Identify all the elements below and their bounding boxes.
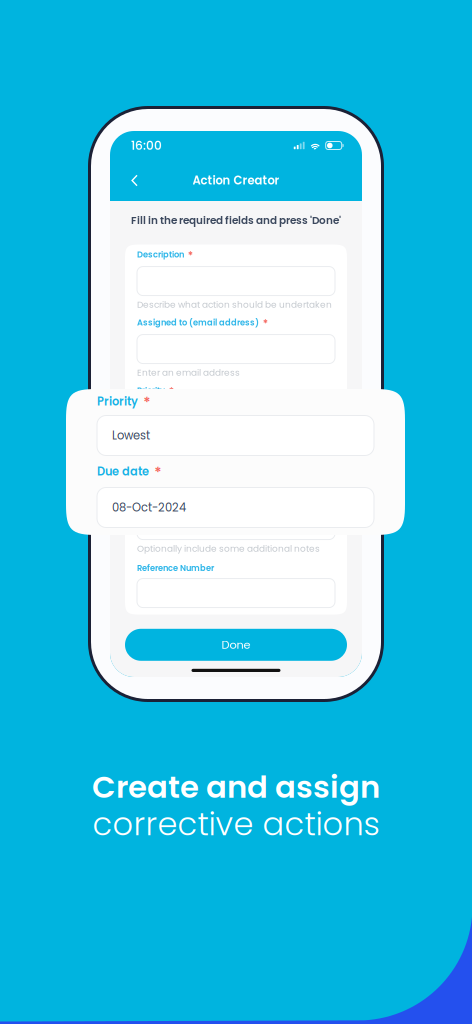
staticText: Reference Number	[137, 562, 214, 574]
staticText: *	[263, 316, 268, 331]
staticText: Due date	[97, 464, 149, 479]
staticText: Done	[221, 637, 250, 653]
staticText: Assigned to (email address)	[137, 317, 259, 328]
staticText: Due date	[137, 439, 175, 450]
button[interactable]: Done	[125, 629, 347, 661]
staticText: corrective actions	[92, 802, 379, 846]
staticText: Description	[137, 249, 184, 260]
staticText: *	[169, 384, 174, 399]
staticText: Priority	[137, 385, 165, 396]
staticText: 08-Oct-2024	[112, 499, 186, 516]
staticText: *	[154, 463, 161, 483]
staticText: Notes	[137, 494, 161, 506]
staticText: Fill in the required fields and press 'D…	[131, 213, 341, 228]
button[interactable]: Back	[123, 167, 146, 193]
staticText: Priority	[97, 394, 138, 409]
staticText: 16:00	[131, 137, 162, 154]
staticText: Describe what action should be undertake…	[137, 298, 332, 311]
staticText: *	[143, 393, 150, 413]
staticText: Action Creator	[192, 172, 279, 189]
staticText: Optionally include some additional notes	[137, 542, 320, 555]
staticText: *	[188, 248, 193, 263]
staticText: Create and assign	[92, 765, 380, 808]
staticText: Lowest	[112, 427, 150, 444]
staticText: Enter an email address	[137, 366, 240, 379]
